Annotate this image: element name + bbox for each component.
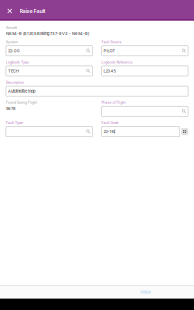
button[interactable]: Pick fault code xyxy=(181,128,188,135)
button[interactable] xyxy=(6,126,92,137)
button[interactable]: PILOT xyxy=(101,46,188,56)
staticText: Raise Fault xyxy=(19,8,45,14)
button[interactable]: Autothrottle inop xyxy=(6,86,188,96)
staticText: 22-00 xyxy=(8,48,20,53)
staticText: Phase of Flight xyxy=(101,101,125,105)
button[interactable]: Close xyxy=(0,0,19,20)
staticText: Found During Flight xyxy=(6,101,37,105)
staticText: Fault Source xyxy=(101,40,121,44)
staticText: Description xyxy=(6,81,24,84)
staticText: Logbook Reference xyxy=(101,60,132,64)
staticText: 5678 xyxy=(6,106,16,111)
staticText: Fault Code xyxy=(101,121,118,125)
button[interactable]: 22-00 xyxy=(6,46,92,56)
staticText: N654-B (81205 Boeing 737-8V3 - N654-B) xyxy=(6,31,89,36)
staticText: TECH xyxy=(8,68,19,73)
staticText: Autothrottle inop xyxy=(8,89,35,94)
staticText: 22-16 xyxy=(103,129,114,134)
staticText: PILOT xyxy=(103,48,115,53)
staticText: Logbook Type xyxy=(6,60,29,64)
button[interactable]: 22-16 xyxy=(101,126,179,137)
button[interactable] xyxy=(101,106,188,116)
button[interactable]: TECH xyxy=(6,66,92,76)
button[interactable]: L2345 xyxy=(101,66,188,76)
staticText: System xyxy=(6,40,18,44)
staticText: Aircraft xyxy=(6,26,17,30)
staticText: Fault Type xyxy=(6,121,23,125)
button[interactable]: Finish xyxy=(97,286,194,299)
staticText: L2345 xyxy=(103,68,115,73)
staticText: Finish xyxy=(140,290,150,295)
